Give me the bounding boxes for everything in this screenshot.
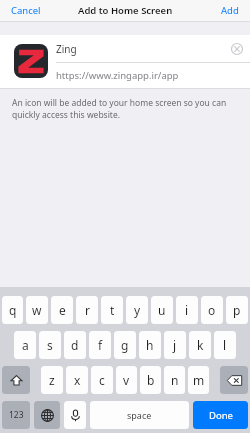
button[interactable]: Zing: [56, 35, 250, 62]
staticText: v: [123, 372, 130, 388]
staticText: Done: [209, 409, 233, 422]
button[interactable]: u: [151, 296, 173, 324]
button[interactable]: o: [201, 296, 223, 324]
staticText: Zing: [56, 42, 77, 56]
staticText: An icon will be added to your home scree…: [12, 97, 234, 121]
staticText: https://www.zingapp.ir/app: [56, 69, 179, 82]
staticText: c: [99, 372, 105, 388]
staticText: w: [32, 302, 42, 318]
button[interactable]: b: [140, 366, 161, 394]
button[interactable]: j: [164, 331, 186, 359]
button[interactable]: m: [188, 366, 209, 394]
staticText: i: [185, 302, 189, 318]
staticText: g: [121, 337, 129, 353]
staticText: s: [47, 337, 53, 353]
staticText: t: [110, 302, 115, 318]
button[interactable]: g: [114, 331, 136, 359]
staticText: k: [197, 337, 204, 353]
button[interactable]: i: [176, 296, 198, 324]
button[interactable]: v: [116, 366, 137, 394]
staticText: Add: [221, 4, 239, 17]
staticText: a: [22, 337, 29, 353]
button[interactable]: Next keyboard: [34, 401, 60, 429]
button[interactable]: c: [91, 366, 113, 394]
button[interactable]: l: [214, 331, 236, 359]
staticText: 123: [9, 409, 24, 421]
button[interactable]: f: [89, 331, 111, 359]
button[interactable]: Clear text: [231, 43, 243, 55]
button[interactable]: d: [64, 331, 86, 359]
staticText: j: [173, 337, 177, 353]
staticText: q: [9, 302, 17, 318]
button[interactable]: Dictation: [64, 401, 86, 429]
button[interactable]: s: [39, 331, 61, 359]
staticText: b: [147, 372, 155, 388]
staticText: r: [85, 302, 90, 318]
button[interactable]: q: [2, 296, 23, 324]
button[interactable]: e: [51, 296, 73, 324]
staticText: m: [193, 372, 205, 388]
staticText: Cancel: [11, 4, 41, 17]
staticText: p: [233, 302, 241, 318]
staticText: f: [98, 337, 103, 353]
button[interactable]: Shift: [2, 366, 30, 394]
staticText: u: [158, 302, 166, 318]
staticText: o: [208, 302, 216, 318]
staticText: x: [74, 372, 81, 388]
button[interactable]: Add: [218, 0, 242, 21]
button[interactable]: z: [41, 366, 63, 394]
button[interactable]: k: [189, 331, 211, 359]
button[interactable]: Done: [193, 401, 248, 429]
button[interactable]: Cancel: [8, 0, 44, 21]
button[interactable]: p: [226, 296, 248, 324]
staticText: n: [171, 372, 179, 388]
button[interactable]: y: [126, 296, 148, 324]
staticText: Add to Home Screen: [78, 4, 173, 17]
button[interactable]: a: [14, 331, 36, 359]
button[interactable]: x: [66, 366, 88, 394]
button[interactable]: r: [76, 296, 98, 324]
button[interactable]: space: [90, 401, 189, 429]
staticText: y: [134, 302, 141, 318]
staticText: l: [223, 337, 227, 353]
staticText: space: [127, 409, 152, 421]
staticText: z: [49, 372, 55, 388]
button[interactable]: w: [26, 296, 48, 324]
staticText: h: [146, 337, 154, 353]
button[interactable]: Backspace: [220, 366, 248, 394]
staticText: e: [59, 302, 66, 318]
button[interactable]: h: [139, 331, 161, 359]
button[interactable]: 123: [2, 401, 30, 429]
staticText: d: [71, 337, 79, 353]
button[interactable]: n: [164, 366, 185, 394]
button[interactable]: t: [101, 296, 123, 324]
